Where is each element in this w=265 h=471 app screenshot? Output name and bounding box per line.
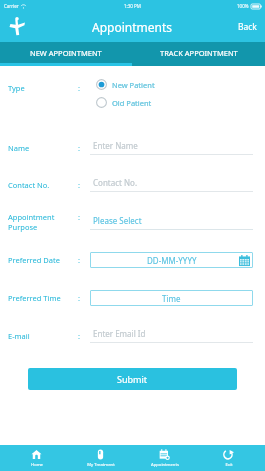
staticText: Exit (225, 462, 233, 468)
button[interactable]: Time (90, 290, 253, 306)
other: Pick date (239, 255, 250, 266)
staticText: Time (162, 293, 181, 304)
button[interactable]: Back (230, 15, 265, 39)
button[interactable]: My Treatment (73, 445, 128, 471)
staticText: My Treatment (87, 462, 115, 468)
button[interactable]: Home (9, 445, 64, 471)
staticText: Name (8, 143, 30, 153)
button[interactable]: Logo (6, 16, 28, 38)
staticText: : (78, 180, 81, 190)
button[interactable]: Submit (28, 368, 237, 390)
button[interactable]: DD-MM-YYYY (90, 252, 253, 268)
button[interactable]: TRACK APPOINTMENT (132, 42, 265, 63)
staticText: Appointment Purpose (8, 212, 55, 232)
staticText: Appointments (151, 462, 179, 468)
staticText: Please Select (93, 215, 142, 226)
staticText: Preferred Time (8, 293, 61, 303)
button[interactable]: NEW APPOINTMENT (0, 42, 132, 63)
button[interactable]: Appointments (137, 445, 192, 471)
staticText: Submit (117, 373, 148, 385)
staticText: Appointments (92, 19, 173, 35)
staticText: Contact No. (8, 180, 50, 190)
button[interactable]: Please Select (90, 215, 253, 230)
button[interactable]: Exit (201, 445, 256, 471)
staticText: 100% (237, 3, 249, 9)
staticText: Type (8, 83, 25, 93)
staticText: Preferred Date (8, 255, 60, 265)
staticText: Enter Name (93, 140, 138, 151)
button[interactable]: Enter Name (90, 140, 253, 155)
staticText: Old Patient (112, 98, 152, 108)
staticText: Home (31, 462, 43, 468)
button[interactable]: Old Patient (96, 97, 152, 108)
staticText: Contact No. (93, 177, 138, 188)
staticText: : (78, 83, 81, 93)
staticText: : (78, 331, 81, 341)
staticText: 1:30 PM (124, 3, 141, 9)
staticText: NEW APPOINTMENT (30, 48, 102, 58)
staticText: Back (238, 21, 257, 33)
staticText: New Patient (112, 80, 155, 90)
staticText: Carrier (4, 3, 19, 9)
button[interactable]: Enter Email Id (90, 328, 253, 343)
staticText: : (78, 143, 81, 153)
staticText: : (78, 212, 81, 222)
staticText: E-mail (8, 331, 30, 341)
staticText: DD-MM-YYYY (147, 255, 197, 266)
staticText: Enter Email Id (93, 328, 146, 339)
button[interactable]: Contact No. (90, 177, 253, 192)
staticText: TRACK APPOINTMENT (160, 48, 238, 58)
staticText: : (78, 293, 81, 303)
button[interactable]: New Patient (96, 79, 155, 90)
staticText: : (78, 255, 81, 265)
